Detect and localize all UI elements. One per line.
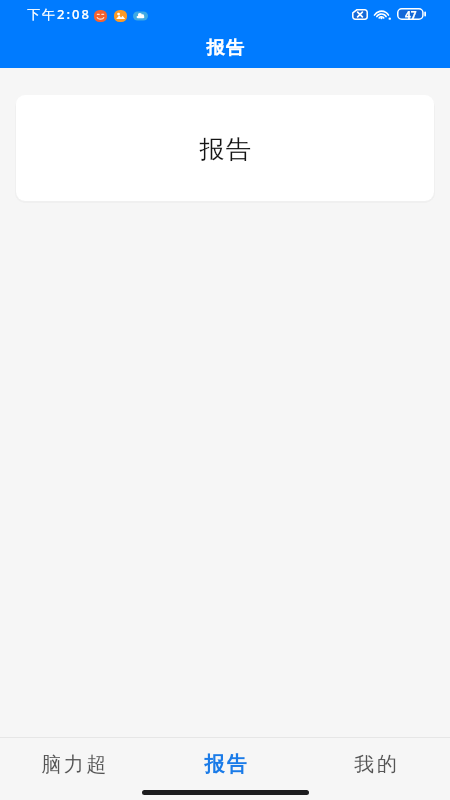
other: No SIM card (352, 9, 368, 20)
button[interactable]: 脑力超 (0, 738, 150, 785)
button[interactable]: 报告 (150, 738, 300, 785)
staticText: 报告 (203, 752, 248, 777)
staticText: 报告 (206, 37, 244, 60)
other: Battery 47 percent (397, 8, 426, 20)
staticText: 我的 (353, 752, 398, 777)
staticText: 下午2:08 (27, 5, 91, 23)
staticText: 脑力超 (41, 752, 109, 777)
staticText: 47 (405, 8, 417, 20)
other: Wi-Fi (373, 9, 391, 20)
staticText: 报告 (199, 134, 251, 165)
button[interactable]: 我的 (300, 738, 450, 785)
button[interactable]: 报告 (16, 95, 434, 201)
